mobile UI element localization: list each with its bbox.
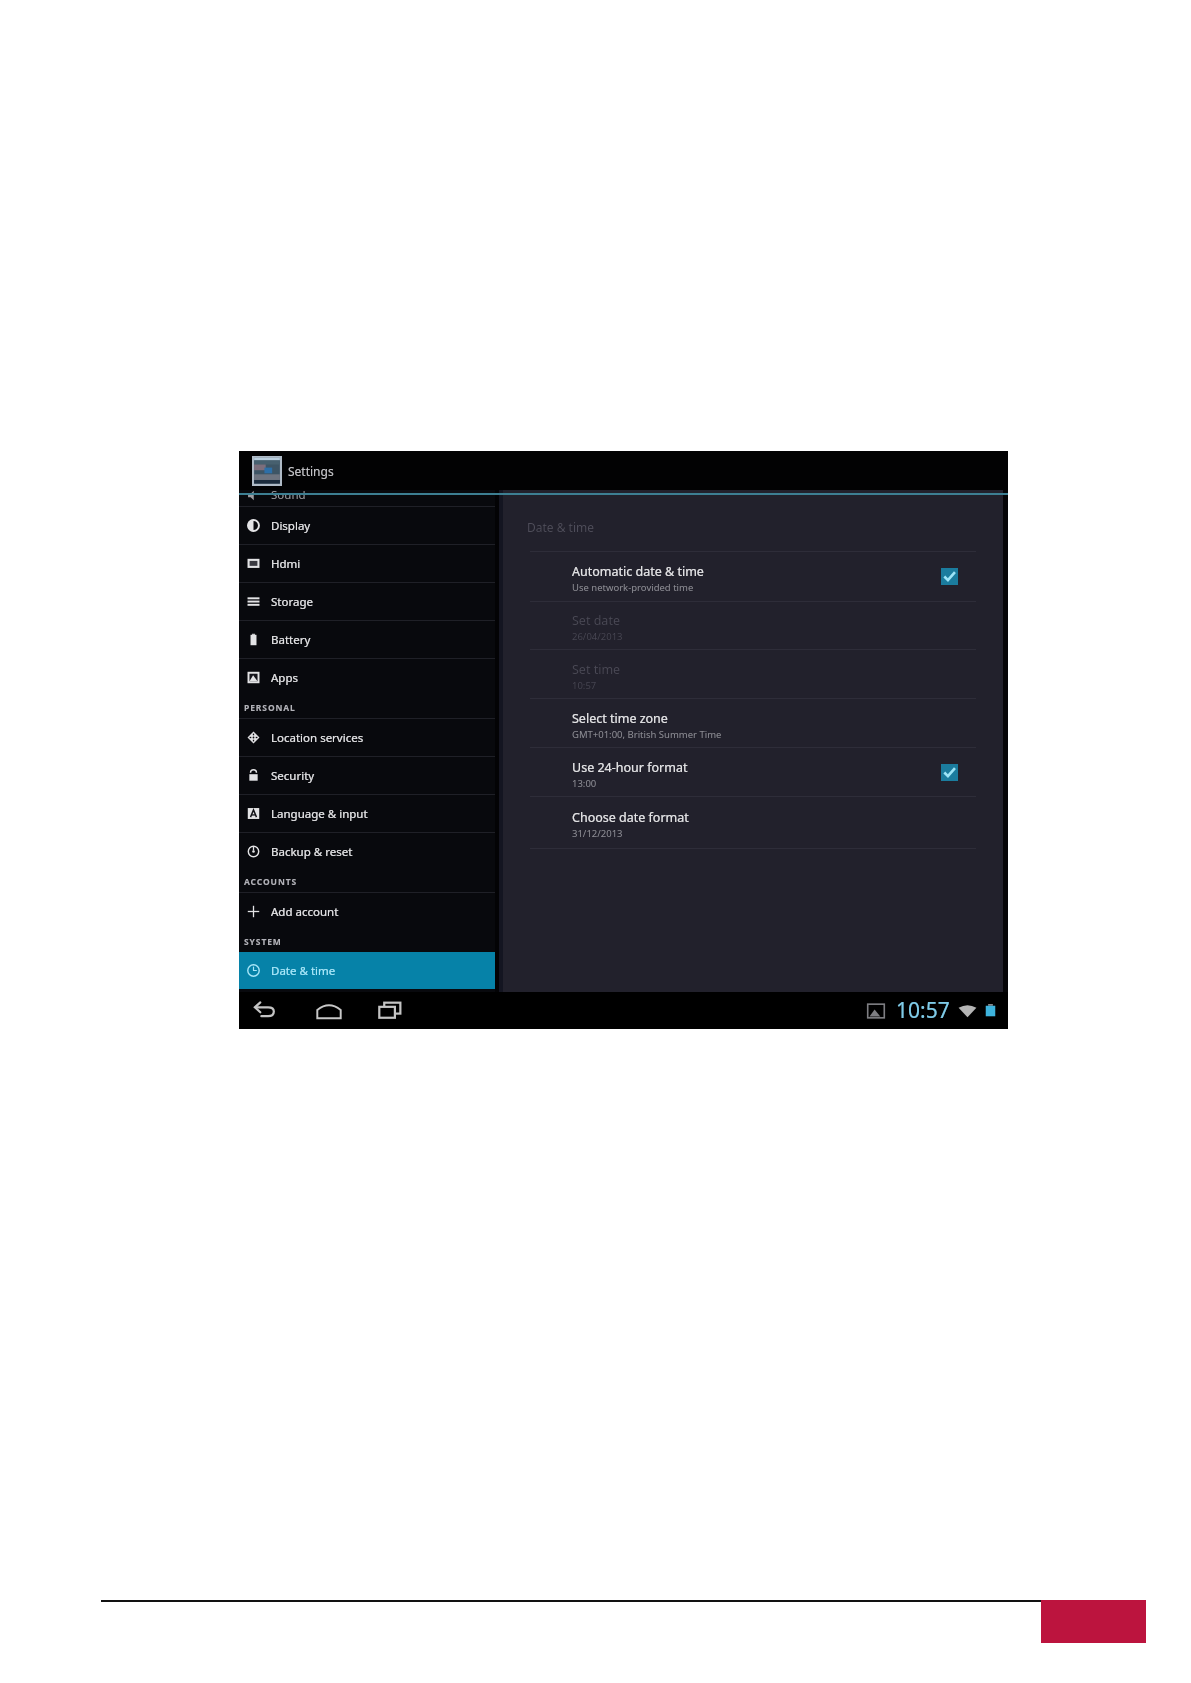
staticText: Date & time [271, 963, 336, 979]
staticText: 10:57 [572, 679, 597, 692]
button[interactable]: Recent apps [376, 996, 406, 1026]
staticText: GMT+01:00, British Summer Time [572, 728, 722, 741]
button[interactable]: Screenshot captured [865, 1000, 887, 1022]
button[interactable]: Battery [239, 621, 495, 658]
staticText: Hdmi [271, 556, 301, 572]
button[interactable]: Automatic date & time [503, 552, 1003, 601]
staticText: Use network-provided time [572, 581, 694, 594]
staticText: Choose date format [572, 809, 689, 826]
button[interactable]: Choose date format [503, 797, 1003, 848]
staticText: 31/12/2013 [572, 827, 623, 840]
button[interactable]: Hdmi [239, 545, 495, 582]
button[interactable]: Language & input [239, 795, 495, 832]
button[interactable]: Display [239, 507, 495, 544]
staticText: Select time zone [572, 710, 668, 727]
button[interactable]: Add account [239, 893, 495, 930]
button[interactable]: Back [250, 996, 280, 1026]
staticText: Display [271, 518, 311, 534]
button[interactable]: Select time zone [503, 699, 1003, 747]
button[interactable]: Security [239, 757, 495, 794]
staticText: Backup & reset [271, 844, 353, 860]
button[interactable]: Home [314, 996, 344, 1026]
staticText: Language & input [271, 806, 368, 822]
staticText: Location services [271, 730, 364, 746]
button[interactable]: Storage [239, 583, 495, 620]
staticText: Set date [572, 612, 620, 629]
staticText: Set time [572, 661, 621, 678]
button[interactable]: Apps [239, 659, 495, 696]
staticText: 10:57 [896, 996, 950, 1025]
button[interactable]: Use 24-hour format [503, 748, 1003, 796]
staticText: Storage [271, 594, 313, 610]
staticText: SYSTEM [244, 936, 282, 948]
staticText: Automatic date & time [572, 563, 704, 580]
staticText: 13:00 [572, 777, 597, 790]
button[interactable]: Toggle Automatic date & time [941, 568, 958, 585]
button[interactable]: Backup & reset [239, 833, 495, 870]
button[interactable]: Settings [239, 451, 1008, 490]
staticText: Use 24-hour format [572, 759, 688, 776]
button[interactable]: Location services [239, 719, 495, 756]
staticText: 26/04/2013 [572, 630, 623, 643]
staticText: Security [271, 768, 315, 784]
staticText: ACCOUNTS [244, 876, 298, 888]
staticText: Add account [271, 904, 339, 920]
staticText: PERSONAL [244, 702, 296, 714]
staticText: Apps [271, 670, 299, 686]
staticText: Date & time [527, 519, 595, 535]
staticText: Settings [288, 463, 334, 479]
button[interactable]: Toggle Use 24-hour format [941, 764, 958, 781]
staticText: Sound [271, 490, 306, 503]
button[interactable]: Sound [239, 490, 495, 506]
staticText: Battery [271, 632, 311, 648]
button[interactable]: Date & time [239, 952, 495, 989]
